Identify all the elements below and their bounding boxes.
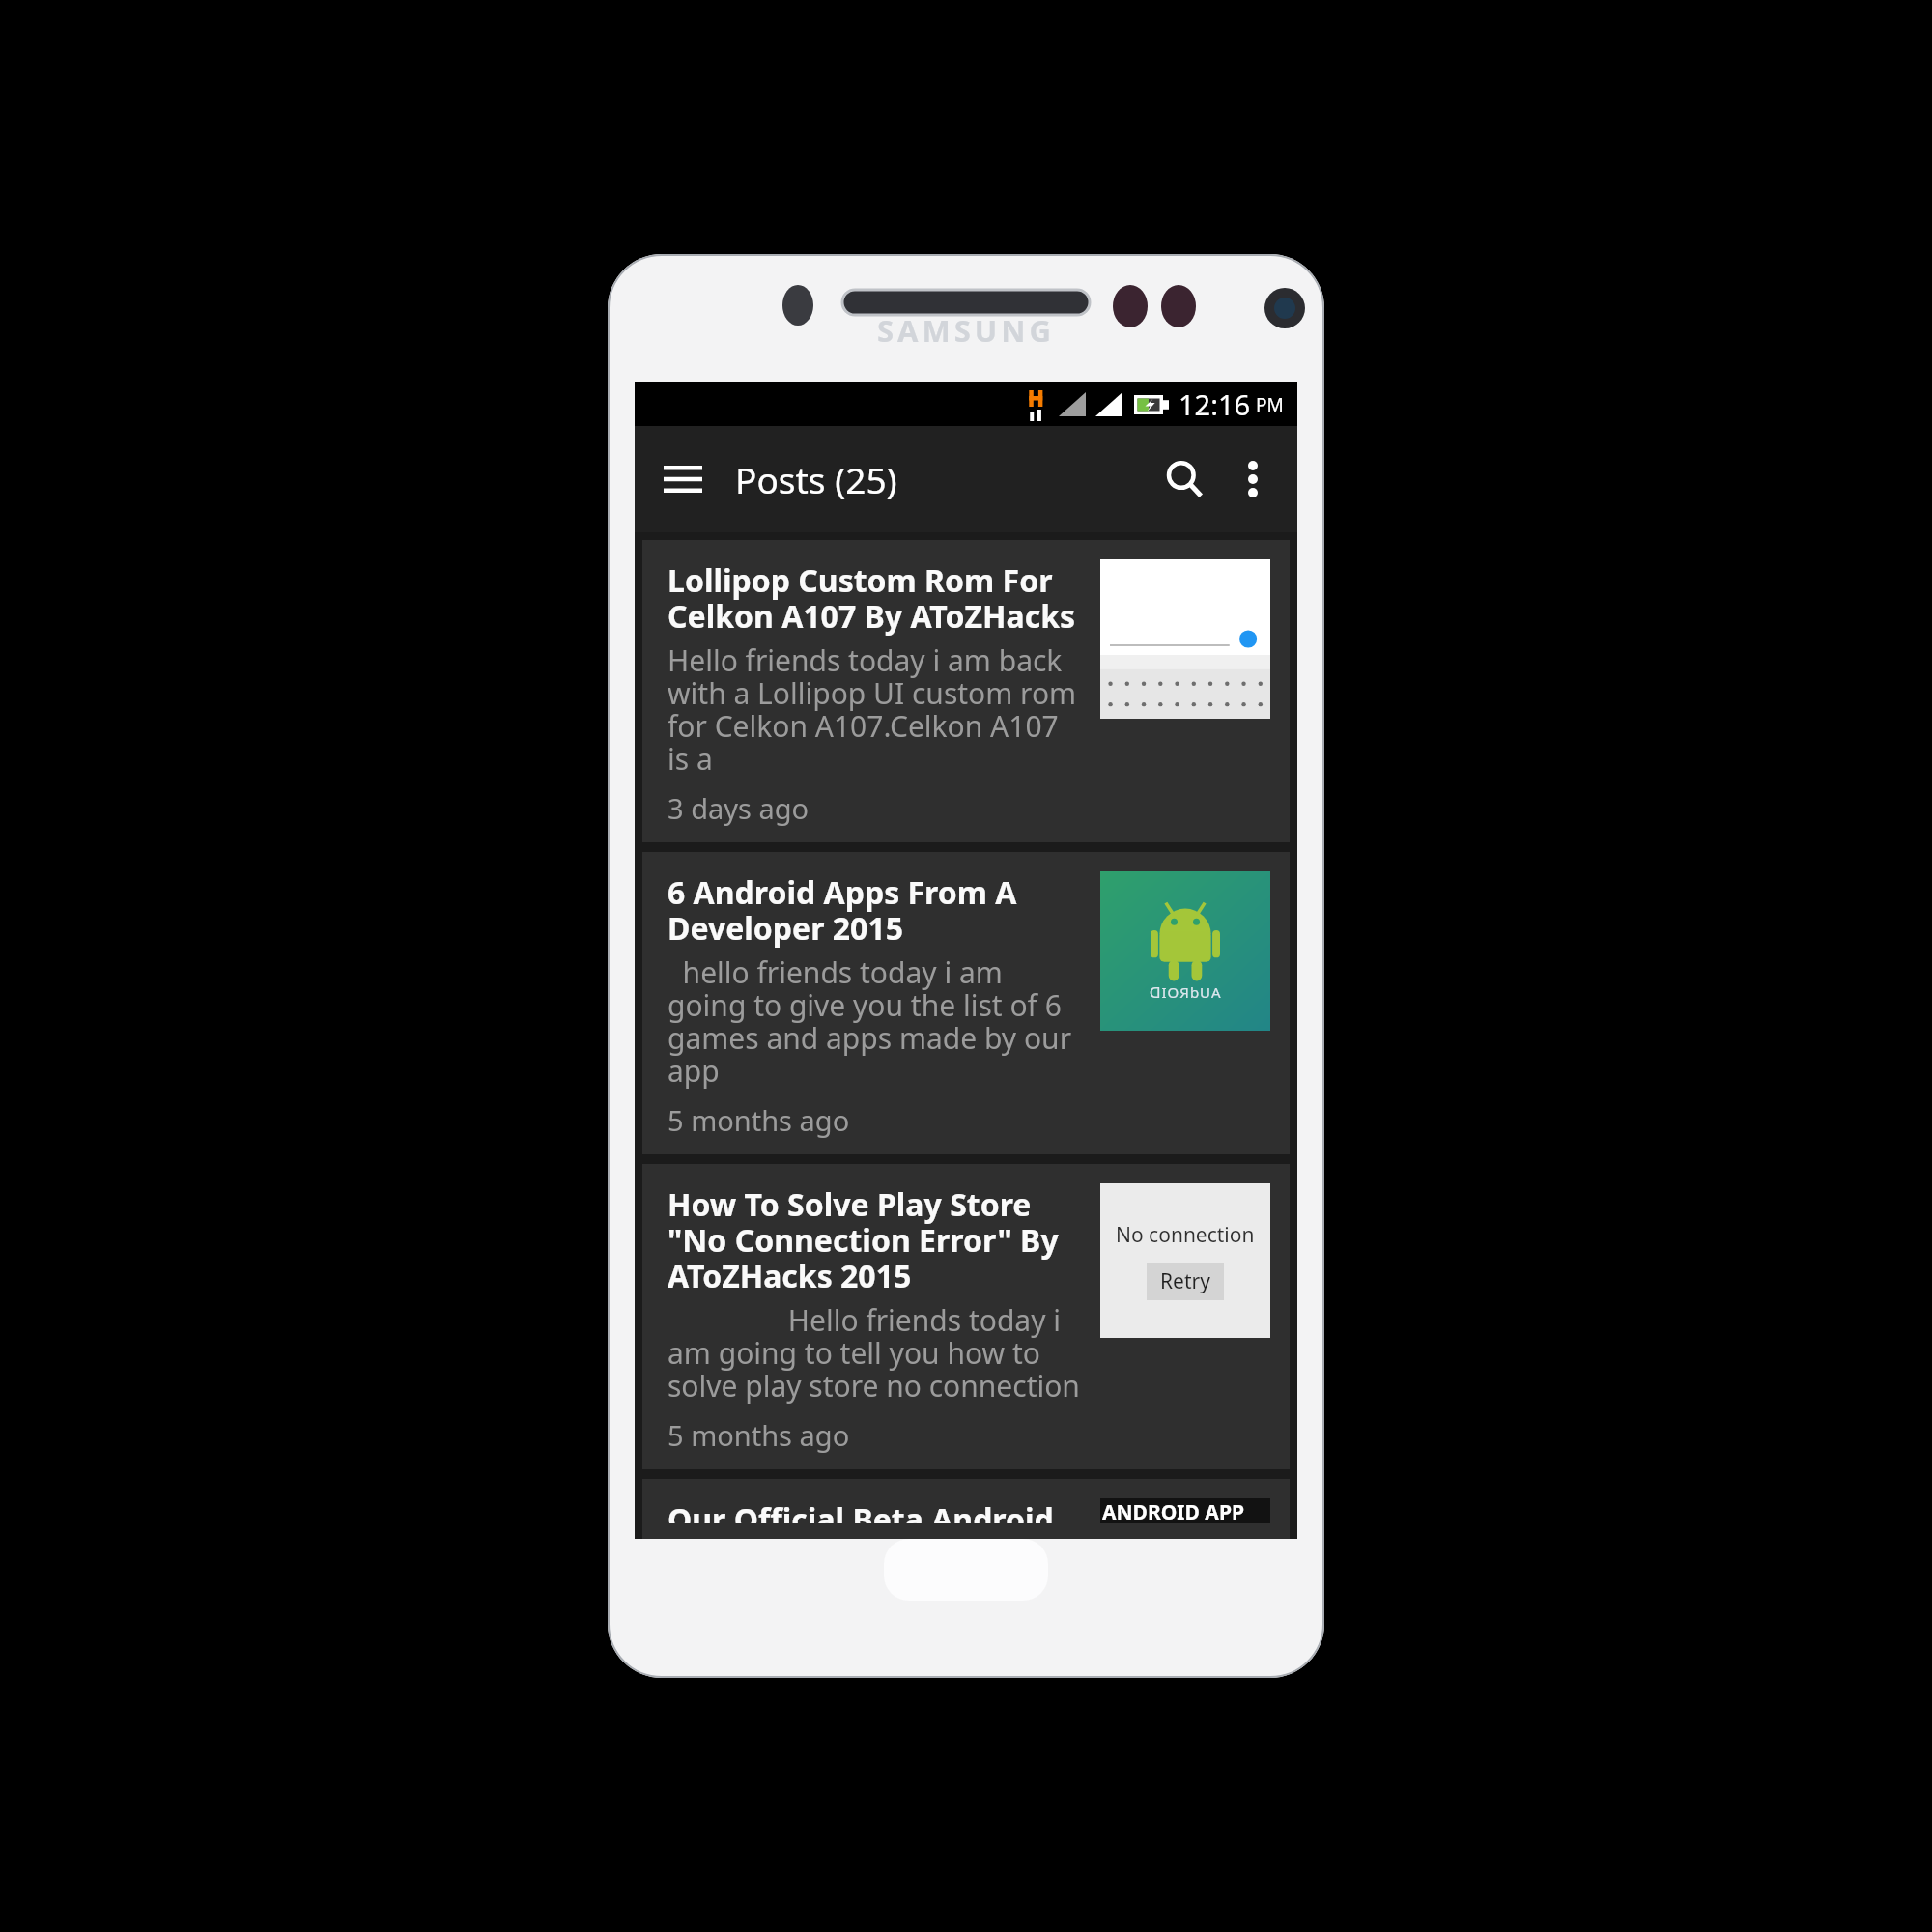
staticText: No connection (1116, 1221, 1255, 1249)
button[interactable]: How To Solve Play Store "No Connection E… (642, 1164, 1290, 1469)
staticText: 5 months ago (668, 1416, 850, 1454)
staticText: 6 Android Apps From A Developer 2015 (668, 871, 1087, 949)
staticText: Hello friends today i am going to tell y… (668, 1300, 1087, 1405)
button[interactable]: Our Official Beta Android App Released !… (642, 1479, 1290, 1539)
staticText: SAMSUNG (877, 310, 1055, 351)
staticText: Lollipop Custom Rom For Celkon A107 By A… (668, 559, 1087, 637)
button[interactable]: Lollipop Custom Rom For Celkon A107 By A… (642, 540, 1290, 842)
button[interactable]: Search (1152, 447, 1216, 511)
button[interactable]: More options (1226, 452, 1280, 506)
staticText: PM (1256, 392, 1284, 417)
button[interactable]: 6 Android Apps From A Developer 2015 (642, 852, 1290, 1154)
staticText: 3 days ago (668, 789, 810, 827)
staticText: Retry (1160, 1267, 1210, 1295)
staticText: ᗡIOЯbUA (1150, 982, 1222, 1002)
staticText: Hello friends today i am back with a Lol… (668, 640, 1087, 778)
button[interactable]: Retry (1147, 1263, 1224, 1300)
staticText: hello friends today i am going to give y… (668, 952, 1087, 1090)
staticText: Posts (25) (735, 455, 897, 503)
button[interactable]: Open navigation drawer (652, 448, 714, 510)
staticText: 12:16 (1179, 385, 1251, 423)
staticText: ANDROID APP ON (1102, 1498, 1270, 1523)
staticText: 5 months ago (668, 1101, 850, 1139)
staticText: How To Solve Play Store "No Connection E… (668, 1183, 1087, 1296)
staticText: Our Official Beta Android App Released !… (668, 1498, 1087, 1523)
